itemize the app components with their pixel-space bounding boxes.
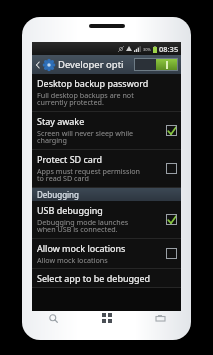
button[interactable]: Checked: [166, 125, 177, 136]
button[interactable]: Recents: [145, 309, 175, 327]
staticText: Allow mock locations: [37, 242, 126, 254]
button[interactable]: Apps: [92, 309, 122, 327]
button[interactable]: Unchecked: [166, 163, 177, 174]
button[interactable]: Checked: [166, 214, 177, 225]
staticText: Debugging: [37, 189, 79, 200]
staticText: Full desktop backups are not currently p…: [37, 90, 134, 108]
staticText: Allow mock locations: [37, 255, 108, 265]
staticText: USB debugging: [37, 204, 103, 216]
staticText: Desktop backup password: [37, 77, 149, 89]
staticText: 08:35: [159, 44, 179, 54]
button[interactable]: Back: [32, 55, 181, 74]
button[interactable]: USB debugging: [32, 201, 181, 239]
button[interactable]: Back: [32, 55, 43, 74]
button[interactable]: Allow mock locations: [32, 239, 181, 269]
button[interactable]: Toggle developer options: [135, 59, 177, 70]
button[interactable]: Desktop backup password: [32, 74, 181, 112]
staticText: Stay awake: [37, 115, 85, 127]
button[interactable]: Stay awake: [32, 112, 181, 150]
staticText: Developer opti: [58, 58, 124, 71]
button[interactable]: Protect SD card: [32, 150, 181, 188]
staticText: Screen will never sleep while charging: [37, 128, 134, 146]
button[interactable]: Search: [38, 309, 68, 327]
staticText: Debugging mode launches when USB is conn…: [37, 217, 129, 235]
staticText: 30%: [143, 47, 151, 52]
button[interactable]: Unchecked: [166, 248, 177, 259]
staticText: Select app to be debugged: [37, 272, 151, 284]
button[interactable]: Select app to be debugged: [32, 269, 181, 288]
staticText: Protect SD card: [37, 153, 102, 165]
staticText: Apps must request permission to read SD …: [37, 166, 141, 184]
